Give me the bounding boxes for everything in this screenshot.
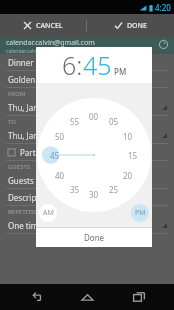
button[interactable]: Thu, Jan 9, 2014 bbox=[0, 127, 174, 144]
staticText: PM bbox=[114, 66, 127, 77]
staticText: 10 bbox=[123, 131, 133, 142]
staticText: GUESTS bbox=[8, 163, 31, 171]
staticText: Thu, Jan 9, 2014 bbox=[8, 102, 68, 113]
staticText: FROM bbox=[8, 90, 26, 98]
staticText: 4:20 bbox=[155, 2, 171, 13]
staticText: CANCEL bbox=[36, 21, 63, 31]
staticText: 30 bbox=[89, 189, 99, 200]
button[interactable]: DONE bbox=[87, 14, 174, 37]
staticText: 40 bbox=[55, 170, 65, 181]
staticText: Golden Gate Park bbox=[8, 74, 74, 85]
button[interactable]: Recents bbox=[122, 284, 156, 310]
staticText: calendar.calvin@gmail.com bbox=[6, 48, 70, 54]
button[interactable]: Thu, Jan 9, 2014 bbox=[0, 99, 174, 116]
staticText: 45 bbox=[83, 48, 112, 82]
staticText: 55 bbox=[70, 116, 80, 127]
staticText: Thu, Jan 9, 2014 bbox=[8, 130, 68, 141]
staticText: AM bbox=[43, 208, 54, 218]
button[interactable]: Dinner with friends bbox=[0, 54, 174, 71]
staticText: One time event bbox=[8, 220, 66, 231]
staticText: 05 bbox=[109, 116, 119, 127]
button[interactable]: Guests bbox=[0, 172, 174, 189]
staticText: TO bbox=[8, 118, 16, 126]
staticText: 35 bbox=[70, 184, 80, 195]
staticText: Description bbox=[8, 192, 52, 203]
button[interactable]: Home bbox=[70, 284, 104, 310]
staticText: 25 bbox=[109, 184, 119, 195]
button[interactable]: PM bbox=[131, 204, 149, 222]
button[interactable]: Color bbox=[158, 39, 169, 50]
staticText: Done bbox=[84, 232, 105, 243]
button[interactable]: Description bbox=[0, 189, 174, 206]
staticText: REPETITION bbox=[8, 208, 43, 216]
button[interactable]: AM bbox=[39, 204, 57, 222]
button[interactable]: Part of the day bbox=[0, 144, 174, 161]
button[interactable]: Golden Gate Park bbox=[0, 71, 174, 88]
staticText: Guests bbox=[8, 175, 34, 186]
staticText: 45 bbox=[50, 150, 60, 161]
button[interactable]: Back bbox=[18, 284, 52, 310]
staticText: calendar.calvin@gmail.com bbox=[6, 38, 95, 48]
button[interactable]: One time event bbox=[0, 217, 174, 234]
staticText: 15 bbox=[128, 150, 138, 161]
staticText: 20 bbox=[123, 170, 133, 181]
staticText: 50 bbox=[55, 131, 65, 142]
button[interactable]: Done bbox=[36, 228, 152, 247]
staticText: Part of the day bbox=[20, 147, 76, 158]
staticText: 00 bbox=[89, 111, 99, 122]
staticText: DONE bbox=[127, 21, 147, 31]
staticText: PM bbox=[135, 208, 146, 218]
button[interactable]: CANCEL bbox=[0, 14, 86, 37]
staticText: 6: bbox=[62, 48, 83, 82]
staticText: Dinner with friends bbox=[8, 57, 81, 68]
